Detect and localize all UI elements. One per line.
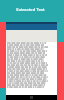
button[interactable] [6, 22, 57, 100]
button[interactable]: Extracted Text [0, 0, 64, 22]
staticText: Extracted Text [16, 7, 45, 13]
